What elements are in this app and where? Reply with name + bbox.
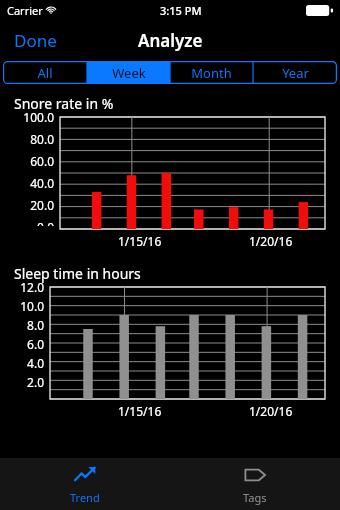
staticText: 40.0 [0, 175, 54, 191]
staticText: 80.0 [0, 131, 54, 147]
staticText: 8.0 [0, 317, 44, 333]
button[interactable]: Done [0, 22, 69, 59]
staticText: Sleep time in hours [14, 264, 141, 283]
button[interactable]: Month [170, 61, 253, 84]
staticText: 10.0 [0, 298, 44, 314]
staticText: 0.0 [0, 219, 54, 226]
staticText: 20.0 [0, 197, 54, 213]
staticText: 12.0 [0, 279, 44, 295]
staticText: Snore rate in % [14, 94, 114, 113]
staticText: 60.0 [0, 153, 54, 169]
staticText: 1/15/16 [118, 233, 162, 248]
staticText: 1/20/16 [249, 233, 293, 248]
staticText: Trend [70, 490, 100, 505]
button[interactable]: Week [87, 61, 170, 84]
staticText: 100.0 [0, 109, 54, 125]
staticText: Analyze [138, 29, 203, 52]
button[interactable]: Tags [170, 458, 340, 510]
staticText: 2.0 [0, 374, 44, 390]
staticText: Tags [243, 490, 267, 505]
staticText: Week [112, 64, 146, 82]
staticText: 3:15 PM [160, 3, 202, 18]
staticText: Done [14, 29, 57, 52]
staticText: 6.0 [0, 336, 44, 352]
staticText: Month [191, 64, 232, 82]
button[interactable]: All [3, 61, 87, 84]
button[interactable]: Year [253, 61, 337, 84]
staticText: All [37, 64, 53, 82]
staticText: 4.0 [0, 355, 44, 371]
staticText: Year [282, 64, 309, 82]
staticText: Carrier [7, 3, 43, 18]
staticText: 1/15/16 [118, 403, 162, 418]
staticText: 1/20/16 [249, 403, 293, 418]
button[interactable]: Trend [0, 458, 170, 510]
